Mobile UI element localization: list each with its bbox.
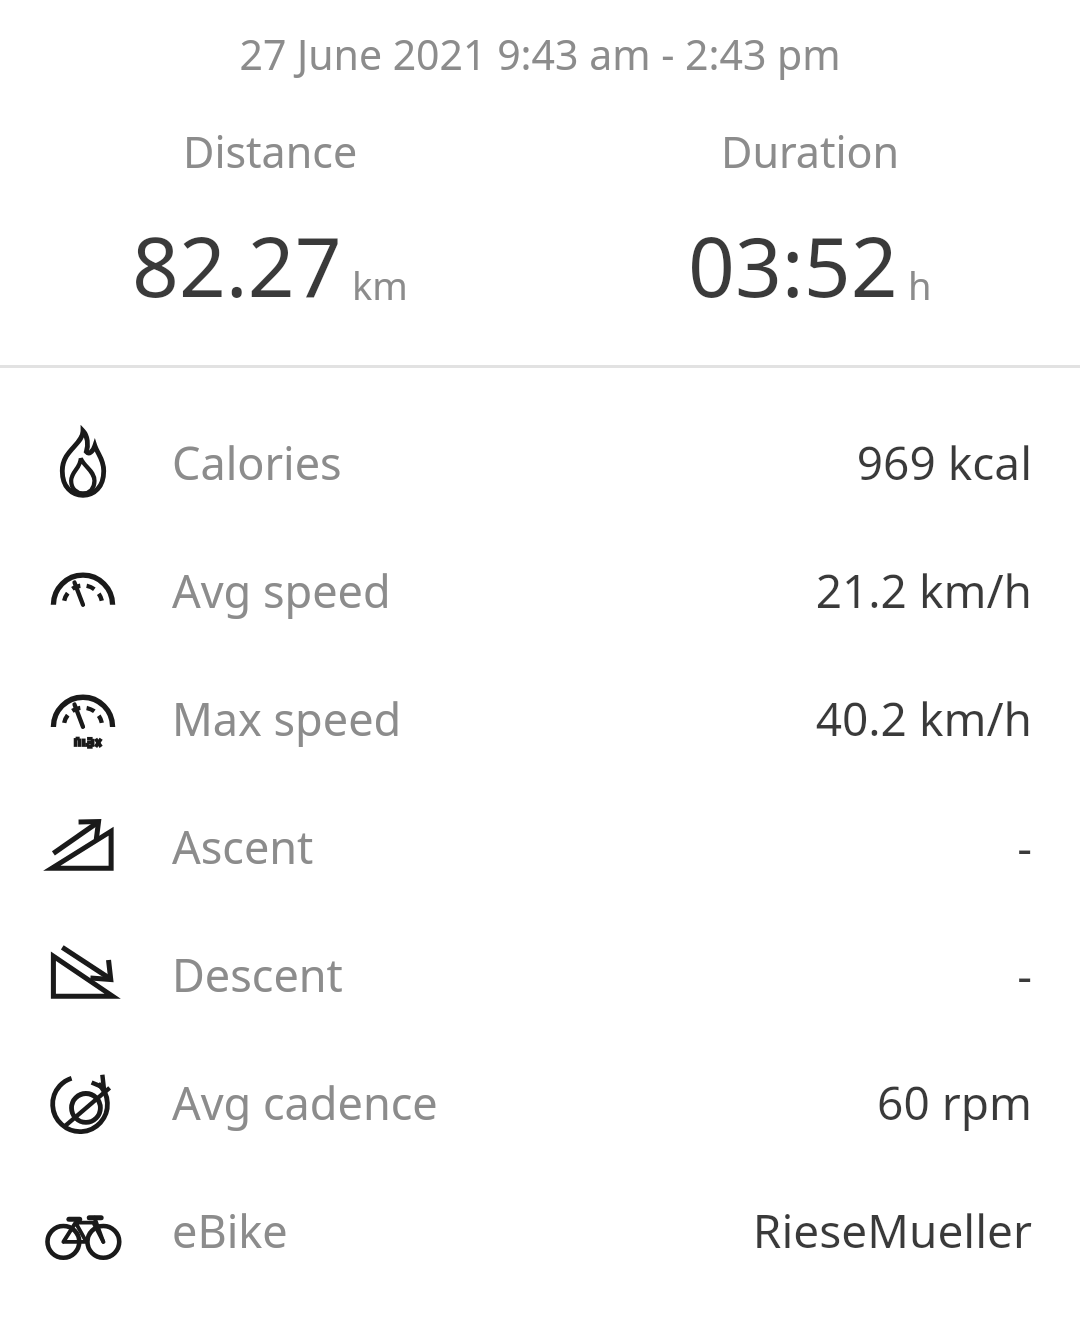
- staticText: h: [908, 259, 932, 311]
- other: Avg cadence: [46, 1065, 120, 1139]
- staticText: Descent: [172, 944, 343, 1005]
- staticText: 60 rpm: [877, 1071, 1032, 1134]
- other: Avg speed: [46, 553, 120, 627]
- button[interactable]: Avg cadence: [0, 1038, 1080, 1166]
- other: Max speed: [46, 681, 120, 755]
- other: Ascent: [46, 809, 120, 883]
- button[interactable]: Calories: [0, 398, 1080, 526]
- staticText: Avg speed: [172, 560, 391, 621]
- button[interactable]: eBike: [0, 1166, 1080, 1294]
- staticText: -: [1017, 815, 1032, 878]
- staticText: 969 kcal: [856, 431, 1032, 494]
- staticText: Ascent: [172, 816, 314, 877]
- staticText: eBike: [172, 1200, 288, 1261]
- other: Calories: [46, 425, 120, 499]
- button[interactable]: Avg speed: [0, 526, 1080, 654]
- staticText: Distance: [183, 122, 358, 181]
- staticText: 21.2 km/h: [815, 559, 1032, 622]
- other: eBike: [46, 1193, 120, 1267]
- button[interactable]: Distance: [0, 122, 540, 321]
- staticText: Duration: [721, 122, 900, 181]
- staticText: Calories: [172, 432, 342, 493]
- button[interactable]: Duration: [540, 122, 1080, 321]
- staticText: 40.2 km/h: [815, 687, 1032, 750]
- button[interactable]: Max speed: [0, 654, 1080, 782]
- staticText: 82.27: [132, 209, 342, 321]
- other: Descent: [46, 937, 120, 1011]
- staticText: km: [352, 259, 408, 311]
- staticText: 03:52: [688, 209, 898, 321]
- staticText: RieseMueller: [752, 1199, 1032, 1262]
- staticText: Avg cadence: [172, 1072, 438, 1133]
- staticText: Max speed: [172, 688, 402, 749]
- button[interactable]: Ascent: [0, 782, 1080, 910]
- staticText: -: [1017, 943, 1032, 1006]
- button[interactable]: Descent: [0, 910, 1080, 1038]
- staticText: 27 June 2021 9:43 am - 2:43 pm: [0, 26, 1080, 82]
